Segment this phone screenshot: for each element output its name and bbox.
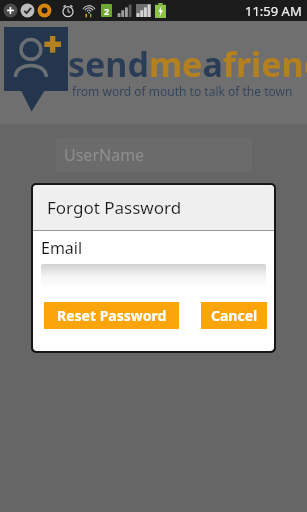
staticText: 11:59 AM <box>245 2 302 20</box>
button[interactable]: Cancel <box>201 302 267 329</box>
staticText: sendmeafriend <box>68 41 307 87</box>
staticText: Cancel <box>211 306 258 325</box>
staticText: from word of mouth to talk of the town <box>72 83 293 99</box>
button[interactable]: Reset Password <box>44 302 179 329</box>
staticText: UserName <box>64 144 145 166</box>
button[interactable] <box>41 264 266 289</box>
staticText: Forgot Password <box>47 196 182 219</box>
staticText: Email <box>41 237 83 259</box>
staticText: 2 <box>104 5 110 17</box>
button[interactable]: UserName <box>56 138 252 172</box>
staticText: Reset Password <box>57 306 167 325</box>
